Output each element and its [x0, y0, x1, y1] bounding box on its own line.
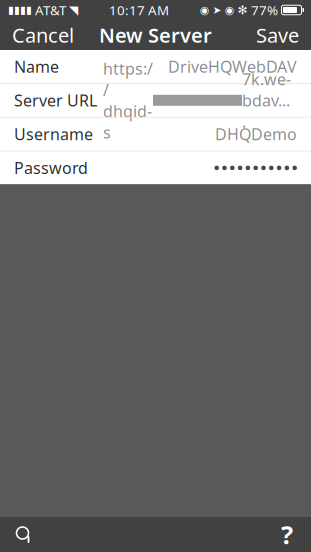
staticText: 7k.webdav.... [242, 68, 291, 132]
button[interactable]: Name [0, 50, 311, 83]
staticText: DHQDemo [215, 123, 297, 145]
staticText: Username [14, 123, 93, 145]
staticText: DriveHQWebDAV [168, 56, 297, 77]
staticText: ➤ [212, 4, 221, 16]
staticText: Password [14, 157, 88, 178]
button[interactable]: Save [244, 20, 311, 50]
staticText: 10:17 AM [109, 1, 169, 19]
staticText: ✻ [237, 3, 247, 17]
staticText: Cancel [12, 22, 74, 48]
button[interactable]: Username [0, 118, 311, 151]
staticText: AT&T [35, 1, 66, 19]
staticText: ▮▮▮▮ [8, 4, 32, 16]
staticText: 77% [251, 1, 278, 19]
staticText: ? [281, 518, 293, 551]
staticText: Save [256, 22, 299, 48]
staticText: ◥ [69, 3, 78, 17]
button[interactable]: Help [265, 517, 309, 552]
button[interactable]: Search [2, 517, 46, 552]
staticText: Server URL [14, 90, 97, 111]
staticText: ◉ [200, 4, 209, 16]
staticText: https://dhqids [103, 58, 153, 143]
staticText: Name [14, 56, 59, 77]
button[interactable]: Password [0, 151, 311, 184]
button[interactable]: Server URL [0, 84, 311, 117]
staticText: New Server [99, 22, 212, 48]
button[interactable]: Cancel [0, 20, 86, 50]
staticText: ◉ [225, 4, 234, 16]
